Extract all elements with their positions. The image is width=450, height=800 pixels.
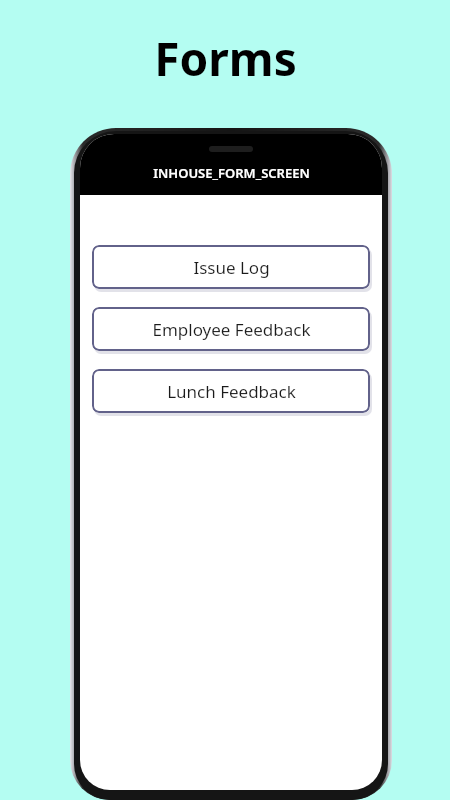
staticText: Employee Feedback xyxy=(152,318,311,341)
button[interactable]: Issue Log xyxy=(92,245,370,289)
staticText: Lunch Feedback xyxy=(167,380,296,403)
staticText: Issue Log xyxy=(193,256,270,279)
button[interactable]: Lunch Feedback xyxy=(92,369,370,413)
staticText: Forms xyxy=(154,27,297,90)
button[interactable]: Employee Feedback xyxy=(92,307,370,351)
staticText: INHOUSE_FORM_SCREEN xyxy=(153,164,310,182)
